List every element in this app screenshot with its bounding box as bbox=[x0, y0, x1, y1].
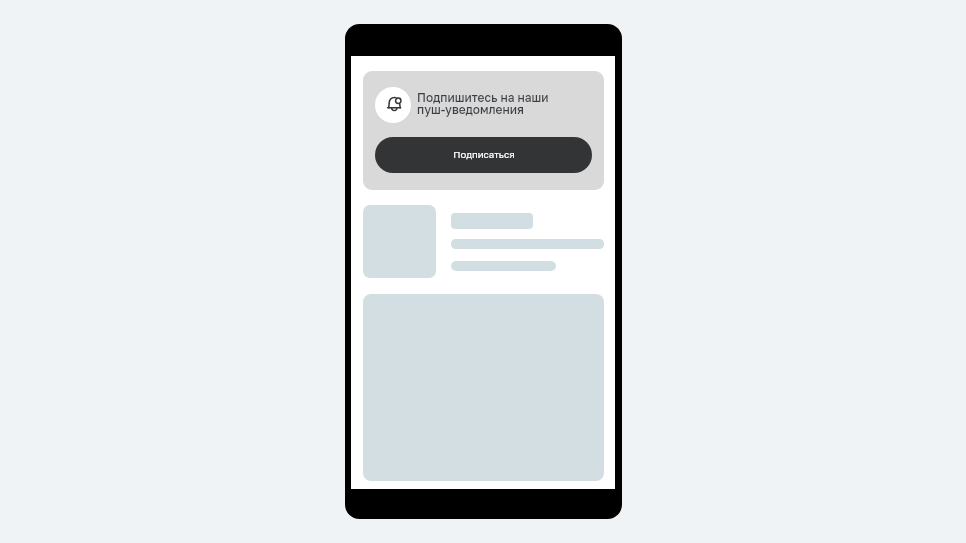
other: Push notifications bbox=[375, 87, 411, 123]
button[interactable]: Push notifications bbox=[363, 71, 604, 190]
staticText: Подпишитесь на наши пуш-уведомления bbox=[417, 90, 549, 117]
button[interactable]: Подписаться bbox=[375, 137, 592, 173]
staticText: Подписаться bbox=[453, 149, 515, 161]
